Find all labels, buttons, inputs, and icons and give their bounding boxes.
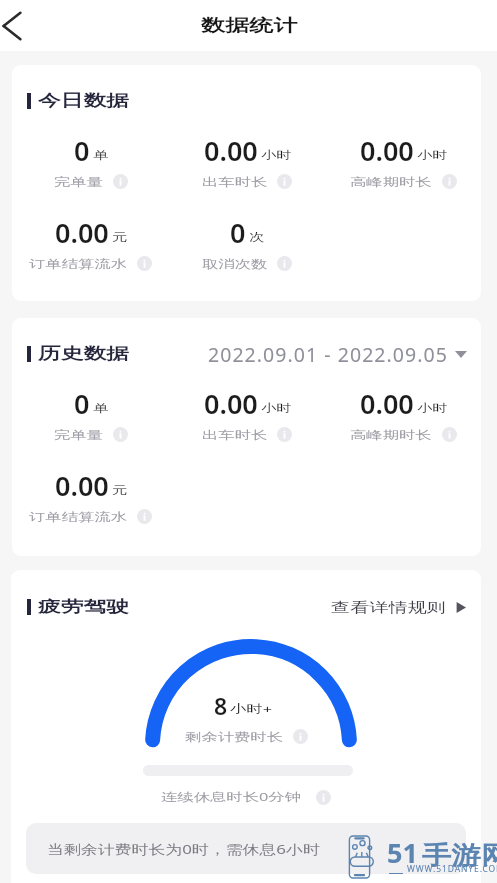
staticText: 0.00 bbox=[55, 214, 109, 251]
staticText: 小时 bbox=[261, 148, 291, 162]
staticText: 连续休息时长0分钟 bbox=[161, 789, 302, 805]
staticText: 单 bbox=[93, 148, 108, 162]
staticText: 元 bbox=[112, 230, 127, 244]
staticText: 小时 bbox=[417, 148, 447, 162]
staticText: 完单量 bbox=[54, 175, 104, 189]
staticText: 高峰期时长 bbox=[350, 428, 432, 442]
staticText: 高峰期时长 bbox=[350, 175, 432, 189]
staticText: 手游网 bbox=[422, 840, 497, 871]
button[interactable]: 2022.09.01 - 2022.09.05 bbox=[208, 341, 467, 367]
staticText: 剩余计费时长 bbox=[185, 730, 283, 744]
staticText: 0 bbox=[230, 214, 246, 251]
staticText: 订单结算流水 bbox=[29, 257, 127, 271]
staticText: 订单结算流水 bbox=[29, 510, 127, 524]
staticText: 出车时长 bbox=[202, 428, 267, 442]
staticText: 历史数据 bbox=[38, 344, 129, 364]
staticText: 元 bbox=[112, 483, 127, 497]
staticText: 次 bbox=[249, 230, 264, 244]
staticText: 小时+ bbox=[230, 701, 273, 717]
staticText: 当剩余计费时长为0时，需休息6小时 bbox=[47, 840, 320, 858]
staticText: 完单量 bbox=[54, 428, 104, 442]
staticText: 0.00 bbox=[204, 132, 258, 169]
staticText: 0.00 bbox=[360, 385, 414, 422]
staticText: 小时 bbox=[417, 401, 447, 415]
staticText: 0 bbox=[74, 385, 90, 422]
staticText: 今日数据 bbox=[38, 91, 129, 111]
staticText: 数据统计 bbox=[201, 15, 298, 36]
staticText: 取消次数 bbox=[202, 257, 267, 271]
staticText: 51 bbox=[387, 834, 418, 871]
button[interactable]: 查看详情规则 bbox=[331, 599, 466, 616]
staticText: 0 bbox=[74, 132, 90, 169]
button[interactable]: Back bbox=[0, 0, 42, 51]
staticText: 0.00 bbox=[360, 132, 414, 169]
staticText: 疲劳驾驶 bbox=[38, 597, 129, 617]
staticText: 8 bbox=[214, 690, 228, 721]
staticText: 2022.09.01 - 2022.09.05 bbox=[208, 341, 448, 367]
staticText: 0.00 bbox=[55, 467, 109, 504]
staticText: 小时 bbox=[261, 401, 291, 415]
staticText: 单 bbox=[93, 401, 108, 415]
staticText: 出车时长 bbox=[202, 175, 267, 189]
staticText: WWW.51DANYE.COM bbox=[407, 863, 497, 875]
staticText: 0.00 bbox=[204, 385, 258, 422]
staticText: 查看详情规则 bbox=[331, 599, 446, 616]
